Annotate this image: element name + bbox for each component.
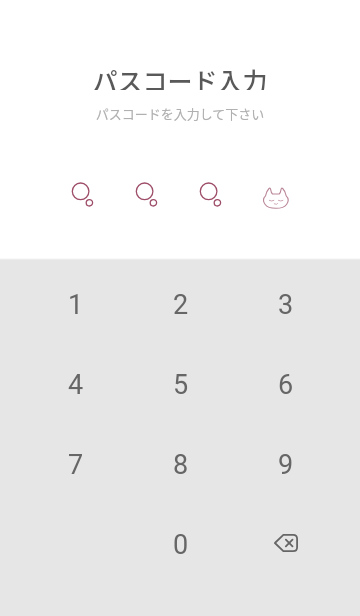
button[interactable]: 8 — [128, 425, 233, 505]
staticText: 4 — [68, 369, 84, 401]
staticText: 7 — [68, 449, 84, 481]
button[interactable]: Backspace — [233, 505, 338, 585]
staticText: パスコードを入力して下さい — [0, 104, 360, 123]
button[interactable]: 5 — [128, 345, 233, 425]
button[interactable]: 6 — [233, 345, 338, 425]
staticText: 1 — [68, 289, 84, 321]
button[interactable]: 9 — [233, 425, 338, 505]
button[interactable]: 7 — [23, 425, 128, 505]
staticText: 8 — [173, 449, 189, 481]
staticText: 6 — [278, 369, 294, 401]
other: Backspace — [274, 534, 298, 552]
staticText: 9 — [278, 449, 294, 481]
staticText: 0 — [173, 529, 189, 561]
staticText: 3 — [278, 289, 294, 321]
button[interactable]: 2 — [128, 265, 233, 345]
button[interactable]: 4 — [23, 345, 128, 425]
button[interactable]: 1 — [23, 265, 128, 345]
button[interactable]: 0 — [128, 505, 233, 585]
staticText: 5 — [173, 369, 189, 401]
button[interactable]: 3 — [233, 265, 338, 345]
staticText: パスコード入力 — [0, 62, 360, 90]
staticText: 2 — [173, 289, 189, 321]
